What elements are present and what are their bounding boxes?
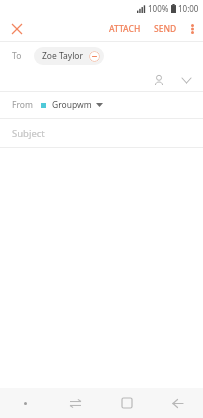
button[interactable]: SEND	[149, 18, 182, 40]
button[interactable]: Subject	[0, 119, 203, 147]
staticText: To	[12, 50, 22, 62]
button[interactable]: Recents	[101, 388, 152, 418]
button[interactable]: Expand recipients	[176, 70, 196, 90]
button[interactable]: Zoe Taylor	[34, 47, 104, 65]
staticText: Zoe Taylor	[42, 50, 84, 62]
staticText: SEND	[154, 23, 177, 35]
staticText: 100%	[148, 3, 169, 14]
button[interactable]: Close	[7, 19, 27, 39]
button[interactable]: Menu	[0, 388, 50, 418]
staticText: Groupwm	[52, 99, 92, 111]
button[interactable]: From	[0, 92, 203, 118]
button[interactable]: Back	[152, 388, 203, 418]
staticText: 10:00	[178, 3, 199, 14]
button[interactable]: Remove Zoe Taylor	[89, 51, 100, 62]
staticText: From	[12, 99, 33, 111]
button[interactable]: ATTACH	[104, 18, 146, 40]
button[interactable]: Switch apps	[50, 388, 101, 418]
button[interactable]: Contacts	[149, 70, 169, 90]
staticText: ATTACH	[109, 23, 141, 35]
button[interactable]: More options	[183, 20, 201, 38]
staticText: Subject	[12, 127, 45, 140]
